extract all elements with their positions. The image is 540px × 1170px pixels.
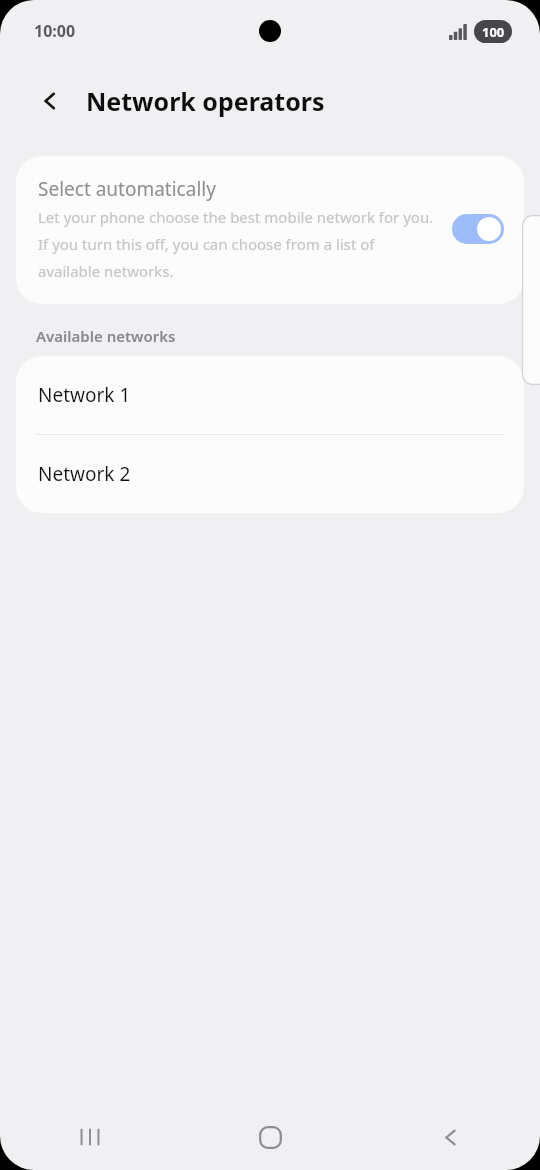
- button[interactable]: Home: [180, 1104, 360, 1170]
- staticText: 10:00: [34, 20, 76, 42]
- staticText: Let your phone choose the best mobile ne…: [38, 207, 438, 282]
- button[interactable]: Network 2: [16, 435, 524, 513]
- staticText: 100: [482, 23, 505, 41]
- staticText: Select automatically: [38, 176, 216, 202]
- button[interactable]: Recent apps: [0, 1104, 180, 1170]
- staticText: Network operators: [86, 84, 325, 118]
- button[interactable]: Back: [360, 1104, 540, 1170]
- button[interactable]: Select automatically: [16, 156, 524, 304]
- button[interactable]: Select automatically toggle: [452, 214, 504, 244]
- staticText: Network 2: [38, 461, 131, 487]
- button[interactable]: Network 1: [16, 356, 524, 434]
- staticText: Available networks: [36, 326, 176, 346]
- staticText: Network 1: [38, 382, 131, 408]
- button[interactable]: Back: [24, 75, 76, 127]
